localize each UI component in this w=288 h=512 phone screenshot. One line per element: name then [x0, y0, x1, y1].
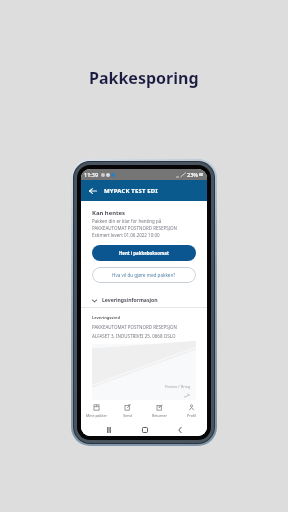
staticText: PAKKEAUTOMAT POSTNORD RESEPSJON: [92, 225, 177, 231]
button[interactable]: Back: [172, 422, 187, 436]
staticText: Hent i pakkeboksomat: [119, 250, 169, 256]
button[interactable]: Leveringsinformasjon: [81, 292, 207, 308]
staticText: Profil: [187, 413, 196, 418]
staticText: Estimert levert 01.06.2022 10:00: [92, 232, 160, 238]
staticText: 23%: [187, 171, 198, 178]
staticText: Pakkesporing: [89, 67, 199, 89]
staticText: Send: [123, 413, 132, 418]
staticText: Pakken din er klar for henting på: [92, 218, 162, 224]
button[interactable]: Send: [112, 402, 143, 420]
staticText: Posten / Bring: [165, 384, 191, 389]
staticText: PAKKEAUTOMAT POSTNORD RESEPSJON: [92, 324, 177, 330]
staticText: Hva vil du gjøre med pakken?: [112, 272, 176, 278]
staticText: Leveringssted: [92, 315, 120, 320]
staticText: 11:39: [84, 171, 99, 178]
staticText: ALFASET 3, INDUSTRIVEI 25, 0668 OSLO: [92, 333, 176, 339]
button[interactable]: Profil: [175, 402, 207, 420]
staticText: Leveringsinformasjon: [102, 297, 158, 304]
staticText: Mine pakker: [86, 413, 107, 418]
staticText: Kan hentes: [92, 209, 126, 217]
button[interactable]: Hent i pakkeboksomat: [92, 245, 196, 261]
button[interactable]: Mine pakker: [81, 402, 112, 420]
button[interactable]: Home: [137, 422, 152, 436]
button[interactable]: Hva vil du gjøre med pakken?: [92, 267, 196, 283]
staticText: Returner: [152, 413, 167, 418]
button[interactable]: Back: [87, 185, 99, 197]
button[interactable]: Returner: [143, 402, 175, 420]
staticText: MYPACK TEST EDI: [104, 187, 158, 195]
button[interactable]: Recents: [101, 422, 116, 436]
